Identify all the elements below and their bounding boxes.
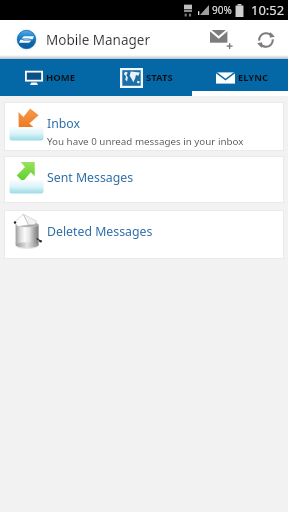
staticText: Sent Messages xyxy=(47,169,134,186)
button[interactable]: Inbox xyxy=(4,102,284,151)
button[interactable]: STATS xyxy=(96,59,192,96)
staticText: ELYNC xyxy=(238,71,269,84)
staticText: 90% xyxy=(212,3,232,17)
staticText: HOME xyxy=(46,71,76,84)
button[interactable]: ELYNC xyxy=(192,59,288,96)
staticText: You have 0 unread messages in your inbox xyxy=(47,135,244,148)
staticText: STATS xyxy=(146,71,173,84)
button[interactable]: Deleted Messages xyxy=(4,210,284,259)
button[interactable]: HOME xyxy=(0,59,96,96)
button[interactable]: Refresh xyxy=(245,20,287,59)
staticText: Deleted Messages xyxy=(47,223,153,240)
staticText: Mobile Manager xyxy=(46,31,151,49)
staticText: Inbox xyxy=(47,115,81,132)
button[interactable]: Compose message xyxy=(201,20,241,59)
staticText: 10:52 xyxy=(251,1,285,19)
button[interactable]: Sent Messages xyxy=(4,156,284,203)
